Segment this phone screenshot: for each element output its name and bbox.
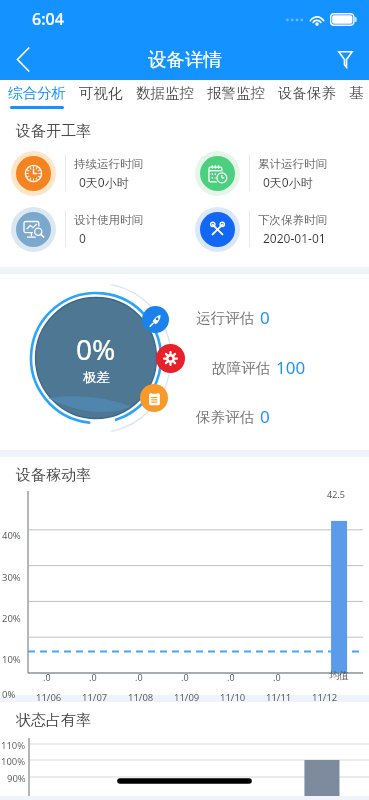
staticText: 基 xyxy=(349,84,364,102)
staticText: 保养评估 xyxy=(196,408,254,426)
staticText: .0 xyxy=(181,671,189,683)
button[interactable]: 报警监控 xyxy=(207,80,265,112)
staticText: 累计运行时间 xyxy=(258,157,327,171)
button[interactable]: 基 xyxy=(349,80,364,112)
staticText: 0% xyxy=(76,330,116,368)
staticText: 10% xyxy=(2,653,21,666)
staticText: 下次保养时间 xyxy=(258,213,327,227)
staticText: 11/07 xyxy=(82,691,108,704)
staticText: 设备开工率 xyxy=(16,122,91,141)
staticText: .0 xyxy=(273,671,281,683)
button[interactable]: 运行评估 xyxy=(142,306,169,333)
staticText: 综合分析 xyxy=(8,84,66,102)
staticText: 11/06 xyxy=(36,691,62,704)
staticText: 设计使用时间 xyxy=(74,213,143,227)
staticText: 0天0小时 xyxy=(263,174,313,190)
staticText: 11/08 xyxy=(128,691,154,704)
staticText: 30% xyxy=(2,571,21,584)
button[interactable]: 保养评估 xyxy=(196,405,270,428)
staticText: 100% xyxy=(1,755,26,768)
staticText: 6:04 xyxy=(32,8,64,30)
staticText: 0 xyxy=(260,405,270,428)
button[interactable]: 故障评估 xyxy=(156,344,185,373)
staticText: 数据监控 xyxy=(136,84,194,102)
staticText: 极差 xyxy=(83,369,110,386)
staticText: .0 xyxy=(135,671,143,683)
button[interactable]: 故障评估 xyxy=(212,356,306,379)
staticText: .0 xyxy=(43,671,51,683)
staticText: 0% xyxy=(2,688,16,701)
button[interactable]: 累计运行时间 xyxy=(184,145,369,201)
staticText: 均值 xyxy=(329,669,349,682)
staticText: 42.5 xyxy=(327,488,345,500)
staticText: .0 xyxy=(227,671,235,683)
staticText: .0 xyxy=(89,671,97,683)
staticText: 设备稼动率 xyxy=(16,466,91,485)
staticText: 报警监控 xyxy=(207,84,265,102)
button[interactable]: Filter xyxy=(321,38,369,80)
staticText: 2020-01-01 xyxy=(263,230,326,246)
button[interactable]: 设计使用时间 xyxy=(0,201,184,257)
button[interactable]: 设备保养 xyxy=(278,80,336,112)
staticText: 设备保养 xyxy=(278,84,336,102)
staticText: 11/10 xyxy=(220,691,246,704)
button[interactable]: 下次保养时间 xyxy=(184,201,369,257)
staticText: 设备详情 xyxy=(148,48,222,71)
button[interactable]: 数据监控 xyxy=(136,80,194,112)
button[interactable]: 综合分析 xyxy=(8,80,66,112)
button[interactable]: Back xyxy=(0,38,46,80)
staticText: 运行评估 xyxy=(196,309,254,327)
staticText: 0 xyxy=(79,230,86,246)
staticText: 100 xyxy=(276,356,306,379)
staticText: 11/09 xyxy=(174,691,200,704)
staticText: 可视化 xyxy=(79,84,123,102)
staticText: 40% xyxy=(2,529,21,542)
staticText: 0 xyxy=(260,306,270,329)
button[interactable]: 保养评估 xyxy=(140,384,168,412)
staticText: 90% xyxy=(7,772,26,785)
button[interactable]: 可视化 xyxy=(79,80,123,112)
staticText: 状态占有率 xyxy=(16,711,91,730)
staticText: 持续运行时间 xyxy=(74,157,143,171)
staticText: 110% xyxy=(1,739,26,752)
staticText: 故障评估 xyxy=(212,359,270,377)
staticText: 20% xyxy=(2,612,21,625)
staticText: 0天0小时 xyxy=(79,174,129,190)
staticText: 11/12 xyxy=(312,691,338,704)
button[interactable]: 持续运行时间 xyxy=(0,145,184,201)
button[interactable]: 运行评估 xyxy=(196,306,270,329)
staticText: 11/11 xyxy=(266,691,292,704)
